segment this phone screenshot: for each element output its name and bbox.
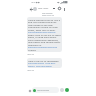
staticText: 10:42 AM [27,53,34,55]
button[interactable]: Here is the list of candidates: vote.gov… [27,58,62,68]
button[interactable]: Attach [60,88,64,92]
staticText: 10:44 AM [27,69,34,71]
staticText: Text message [37,89,49,91]
staticText: 10:42 ● ● [31,1,39,3]
staticText: Here is the list of candidates: vote.gov… [28,59,61,67]
button[interactable]: Send [65,88,69,92]
button[interactable]: Text message [32,87,59,93]
button[interactable]: Show more options [27,88,32,93]
button[interactable]: More options [62,7,66,11]
button[interactable]: Back [29,7,33,11]
button[interactable]: Call [57,6,62,11]
button[interactable]: Video call [52,6,57,11]
staticText: Today 10:42 AM [42,14,54,16]
staticText: Text message [42,12,52,14]
staticText: ◀▶ ▂▄ ███ [57,1,67,3]
button[interactable]: Notice: Elections are on Nov 5 and your … [27,17,62,52]
staticText: Info Alerts [38,7,48,10]
staticText: Notice: Elections are on Nov 5 and your … [28,18,61,51]
